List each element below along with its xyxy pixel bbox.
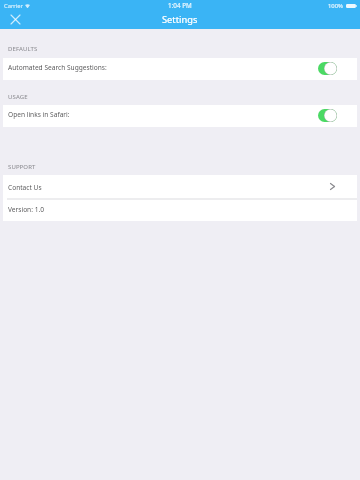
button[interactable]: Automated Search Suggestions: xyxy=(3,58,357,80)
staticText: 1:04 PM xyxy=(168,1,192,10)
button[interactable]: Close xyxy=(7,11,24,28)
staticText: Open links in Safari: xyxy=(8,110,70,119)
staticText: USAGE xyxy=(8,93,28,101)
staticText: Contact Us xyxy=(8,183,42,192)
button[interactable]: Open links in Safari: xyxy=(3,105,357,127)
staticText: 100% xyxy=(328,2,344,10)
button[interactable]: Version: 1.0 xyxy=(3,200,357,221)
button[interactable]: Toggle setting, on xyxy=(318,109,337,122)
staticText: SUPPORT xyxy=(8,163,36,171)
button[interactable]: Contact Us xyxy=(3,175,357,198)
staticText: Carrier xyxy=(4,2,23,10)
staticText: DEFAULTS xyxy=(8,45,38,53)
staticText: Version: 1.0 xyxy=(8,205,44,214)
staticText: Automated Search Suggestions: xyxy=(8,63,107,72)
button[interactable]: Toggle setting, on xyxy=(318,62,337,75)
staticText: Settings xyxy=(162,13,198,26)
